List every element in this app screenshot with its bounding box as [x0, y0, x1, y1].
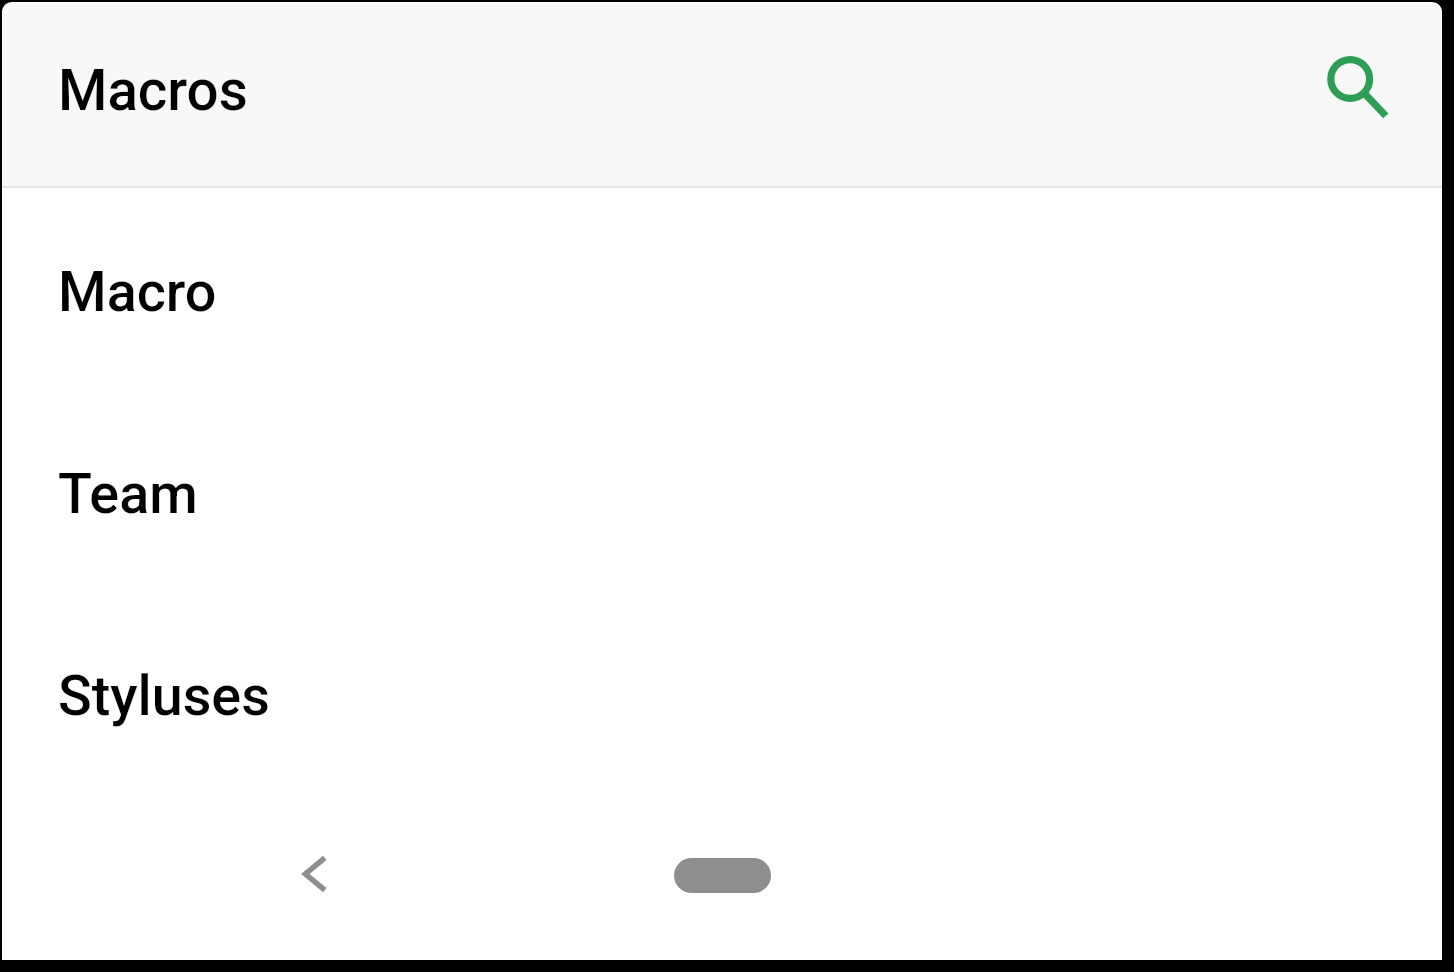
staticText: Styluses — [58, 663, 270, 728]
button[interactable]: Styluses — [2, 594, 1442, 796]
staticText: Macros — [58, 58, 248, 124]
button[interactable]: Search — [1313, 42, 1413, 142]
staticText: Team — [58, 461, 198, 526]
button[interactable]: Macro — [2, 190, 1442, 392]
button[interactable]: Back — [275, 834, 355, 914]
button[interactable]: Team — [2, 392, 1442, 594]
staticText: Macro — [58, 259, 217, 324]
button[interactable]: Home — [647, 843, 797, 907]
